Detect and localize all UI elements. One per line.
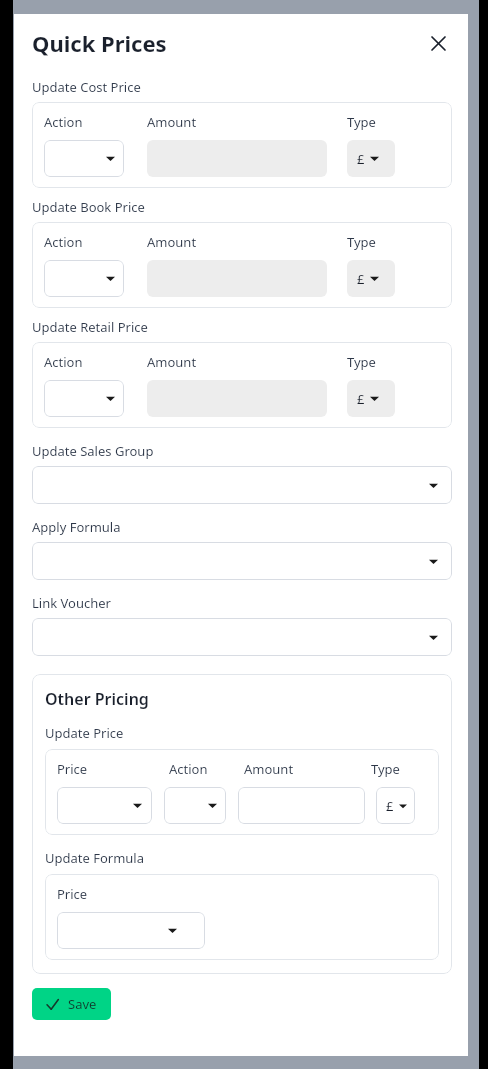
button[interactable]: Link Voucher [32,618,452,656]
staticText: Type [347,113,376,131]
button[interactable]: Dropdown [347,140,395,177]
staticText: Update Formula [45,849,145,867]
staticText: Action [44,113,83,131]
staticText: Type [371,760,400,778]
staticText: Amount [147,113,197,131]
staticText: Action [169,760,208,778]
staticText: Action [44,353,83,371]
button[interactable]: Close [424,29,452,57]
staticText: £ [357,150,365,168]
staticText: Price [57,885,88,903]
staticText: Price [57,760,88,778]
button[interactable]: Dropdown [57,912,205,949]
staticText: £ [357,390,365,408]
button[interactable]: Amount input [238,787,365,824]
staticText: Type [347,233,376,251]
staticText: Update Cost Price [32,78,141,96]
staticText: Update Retail Price [32,318,148,336]
staticText: Amount [244,760,294,778]
staticText: Save [68,995,97,1013]
button[interactable]: Dropdown [44,380,124,417]
staticText: Apply Formula [32,518,121,536]
button[interactable]: Dropdown [44,140,124,177]
staticText: Action [44,233,83,251]
button[interactable]: Update Sales Group [32,466,452,504]
staticText: Amount [147,353,197,371]
staticText: £ [386,797,394,815]
button[interactable]: Dropdown [347,260,395,297]
staticText: Type [347,353,376,371]
staticText: Other Pricing [45,688,149,710]
button[interactable]: Dropdown [347,380,395,417]
button[interactable]: Dropdown [164,787,226,824]
button[interactable]: Dropdown [44,260,124,297]
button[interactable]: Save [32,988,111,1020]
button[interactable]: Apply Formula [32,542,452,580]
staticText: Quick Prices [32,28,167,58]
staticText: Update Book Price [32,198,145,216]
staticText: Link Voucher [32,594,111,612]
staticText: £ [357,270,365,288]
staticText: Update Price [45,724,124,742]
staticText: Amount [147,233,197,251]
staticText: Update Sales Group [32,442,154,460]
button[interactable]: Dropdown [376,787,415,824]
button[interactable]: Dropdown [57,787,152,824]
